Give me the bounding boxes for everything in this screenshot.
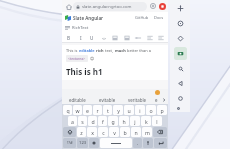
staticText: l	[156, 118, 158, 125]
button[interactable]: v	[109, 127, 119, 137]
button[interactable]: z	[77, 127, 86, 137]
staticText: o	[149, 107, 153, 114]
button[interactable]: Format 4	[157, 34, 165, 42]
button[interactable]: More suggestions	[160, 95, 168, 104]
button[interactable]: s	[78, 116, 87, 126]
staticText: text,	[105, 48, 115, 53]
button[interactable]: d	[88, 116, 97, 126]
button[interactable]: Recents	[174, 107, 187, 110]
button[interactable]: Format 0	[111, 34, 119, 42]
button[interactable]: c	[98, 127, 108, 137]
button[interactable]: i	[135, 105, 145, 115]
staticText: editable	[69, 97, 86, 103]
button[interactable]: t	[103, 105, 112, 115]
button[interactable]: Play	[174, 77, 187, 90]
button[interactable]: ,	[133, 138, 142, 148]
button[interactable]: I	[77, 34, 85, 42]
button[interactable]: Format 1	[123, 34, 131, 42]
button[interactable]: Rotate	[174, 17, 187, 30]
button[interactable]: x	[87, 127, 97, 137]
button[interactable]: e	[152, 95, 160, 104]
button[interactable]: Home	[64, 2, 73, 11]
button[interactable]: r	[93, 105, 102, 115]
button[interactable]: j	[130, 116, 140, 126]
staticText: g	[111, 118, 115, 125]
staticText: GitHub	[135, 15, 149, 20]
staticText: y	[117, 107, 120, 114]
staticText: e	[86, 107, 89, 114]
staticText: evitable	[99, 97, 116, 103]
staticText: veritable	[128, 97, 147, 103]
button[interactable]: U	[88, 34, 96, 42]
staticText: k	[145, 118, 148, 125]
button[interactable]: Pause	[149, 2, 157, 10]
button[interactable]: Emoji	[89, 138, 99, 148]
staticText: slate-angular.ngrtoo.com	[82, 4, 132, 10]
button[interactable]: o	[146, 105, 156, 115]
button[interactable]: veritable	[122, 95, 152, 104]
button[interactable]: Space	[100, 138, 132, 148]
button[interactable]: Stop recording	[158, 2, 166, 10]
staticText: B	[67, 35, 71, 41]
staticText: better than a	[126, 48, 151, 53]
staticText: t	[107, 107, 109, 114]
button[interactable]: Voice input	[143, 138, 153, 148]
staticText: w	[75, 107, 80, 114]
button[interactable]: g	[108, 116, 118, 126]
button[interactable]: n	[131, 127, 141, 137]
button[interactable]: GitHub	[134, 14, 150, 21]
staticText: f	[102, 118, 104, 125]
button[interactable]: Format 3	[146, 34, 154, 42]
button[interactable]: Docs	[153, 14, 165, 21]
button[interactable]: <>	[100, 34, 108, 42]
button[interactable]: editable	[62, 95, 92, 104]
button[interactable]: k	[141, 116, 151, 126]
button[interactable]: a	[68, 116, 77, 126]
button[interactable]: Camera	[174, 47, 187, 60]
button[interactable]: 123	[77, 138, 88, 148]
staticText: r	[96, 107, 99, 114]
staticText: 123	[79, 140, 87, 146]
staticText: much	[115, 48, 126, 53]
button[interactable]: Shift	[63, 127, 76, 137]
button[interactable]: q	[63, 105, 72, 115]
button[interactable]: Move	[174, 2, 187, 15]
staticText: h	[122, 118, 126, 125]
staticText: e	[155, 97, 158, 103]
button[interactable]: p	[157, 105, 167, 115]
button[interactable]: Shape	[174, 32, 187, 45]
staticText: u	[127, 107, 131, 114]
button[interactable]: b	[120, 127, 130, 137]
button[interactable]: y	[113, 105, 123, 115]
staticText: v	[113, 129, 116, 136]
staticText: c	[102, 129, 105, 136]
button[interactable]: m	[142, 127, 152, 137]
button[interactable]: f	[98, 116, 107, 126]
button[interactable]: Enter	[154, 138, 167, 148]
staticText: q	[66, 107, 70, 114]
button[interactable]: e	[83, 105, 92, 115]
staticText: I	[80, 35, 82, 41]
button[interactable]: evitable	[92, 95, 122, 104]
staticText: z	[80, 129, 83, 136]
button[interactable]: Home	[174, 92, 187, 105]
button[interactable]: Settings	[174, 62, 187, 75]
staticText: This is	[66, 48, 79, 53]
staticText: x	[91, 129, 94, 136]
button[interactable]: Emoji	[155, 90, 160, 95]
button[interactable]: slate-angular.ngrtoo.com	[73, 2, 147, 11]
staticText: rich	[95, 48, 105, 53]
staticText: Slate Angular	[73, 15, 104, 21]
button[interactable]: B	[65, 34, 73, 42]
button[interactable]: l	[152, 116, 162, 126]
button[interactable]: u	[124, 105, 134, 115]
button[interactable]: !?#	[63, 138, 76, 148]
staticText: <>	[102, 36, 107, 41]
button[interactable]: Backspace	[153, 127, 167, 137]
button[interactable]: h	[119, 116, 129, 126]
button[interactable]: Format 2	[134, 34, 142, 42]
staticText: b	[123, 129, 127, 136]
staticText: p	[160, 107, 164, 114]
button[interactable]: w	[73, 105, 82, 115]
staticText: m	[145, 129, 150, 136]
